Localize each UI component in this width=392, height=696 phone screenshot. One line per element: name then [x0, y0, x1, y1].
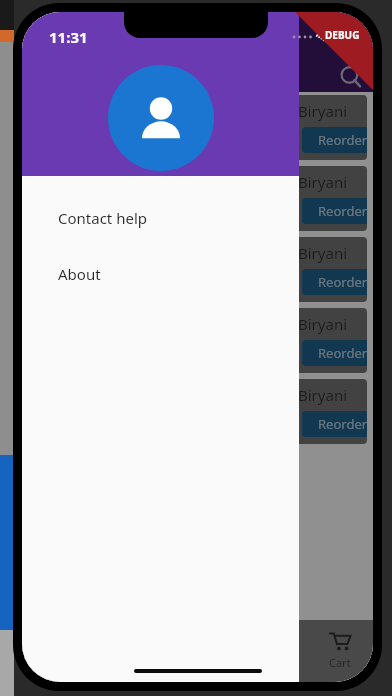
staticText: Biryani — [298, 314, 348, 334]
button[interactable]: Biryani — [28, 308, 367, 373]
staticText: Reorder — [318, 202, 367, 220]
staticText: Reorder — [318, 273, 367, 291]
button[interactable]: Biryani — [28, 237, 367, 302]
button[interactable]: Biryani — [28, 95, 367, 160]
staticText: 11:31 — [49, 27, 88, 47]
button[interactable]: Reorder — [302, 269, 367, 295]
staticText: Reorder — [318, 344, 367, 362]
staticText: Biryani — [298, 385, 348, 405]
staticText: Biryani — [298, 101, 348, 121]
button[interactable]: Cart — [314, 630, 366, 670]
button[interactable]: Reorder — [302, 127, 367, 153]
staticText: Reorder — [318, 415, 367, 433]
button[interactable]: Contact help — [22, 176, 299, 242]
staticText: DEBUG — [325, 28, 360, 42]
button[interactable]: Reorder — [302, 198, 367, 224]
staticText: Biryani — [298, 172, 348, 192]
staticText: Biryani — [298, 243, 348, 263]
button[interactable]: Reorder — [302, 340, 367, 366]
button[interactable]: Reorder — [302, 411, 367, 437]
button[interactable]: Search — [338, 64, 364, 90]
button[interactable]: Biryani — [28, 166, 367, 231]
staticText: Reorder — [318, 131, 367, 149]
button[interactable]: Biryani — [28, 379, 367, 444]
button[interactable]: Account — [108, 65, 214, 171]
button[interactable]: About — [22, 242, 299, 298]
staticText: Cart — [329, 655, 351, 670]
staticText: Contact help — [58, 208, 147, 228]
staticText: About — [58, 264, 101, 284]
